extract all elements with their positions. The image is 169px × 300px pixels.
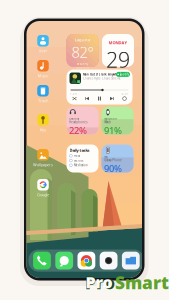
staticText: Charles Hyde Chaos Scheme [83,77,121,80]
staticText: Daily tasks [69,147,89,153]
staticText: Man Out If I Talk Anywhere [83,73,122,76]
staticText: Heat [74,154,80,157]
staticText: Pro [85,271,115,294]
button[interactable]: Daily tasks [66,144,98,172]
staticText: My Galaxy Phone [104,155,122,162]
button[interactable]: Phone [33,252,51,269]
button[interactable]: Messages [55,252,73,269]
staticText: Key [40,127,46,132]
button[interactable]: MONDAY [102,34,134,67]
staticText: User [38,48,47,53]
staticText: 82° [71,42,93,62]
button[interactable]: Wallpapers [31,149,55,167]
button[interactable]: Music [31,60,55,78]
button[interactable]: Key [31,114,55,132]
staticText: 1:24 [70,92,77,95]
staticText: Spotify [120,73,129,76]
staticText: Sunny [80,62,88,66]
staticText: 29 [106,45,130,74]
button[interactable]: My Green Watch [101,106,133,134]
staticText: MONDAY [108,40,127,45]
button[interactable]: Camera [100,252,117,269]
staticText: Google [37,192,49,197]
staticText: Trash [38,98,48,103]
staticText: Wallpapers [33,162,53,167]
staticText: Smart [115,271,169,294]
button[interactable]: Trash [31,85,55,103]
button[interactable]: Google [31,179,55,197]
button[interactable]: Overear Headphones [66,106,98,134]
button[interactable]: Man Out If I Talk Anywhere [66,69,132,104]
staticText: Mediation [74,163,88,167]
button[interactable]: Files [122,252,140,269]
staticText: 91% [104,124,122,137]
staticText: 22% [69,124,87,137]
staticText: H:88 L:58 [75,66,89,69]
button[interactable]: Laguna [66,34,98,67]
staticText: Pro [85,271,112,293]
staticText: 90% [104,162,122,175]
staticText: My Green Watch [104,117,117,124]
button[interactable]: User [31,35,55,53]
button[interactable]: My Galaxy Phone [101,144,133,172]
staticText: Laguna [75,37,90,42]
staticText: Overear Headphones [69,117,87,124]
staticText: Exercise [74,159,84,162]
staticText: -2:07 [121,92,129,95]
staticText: Music [37,73,48,78]
button[interactable]: Chrome [77,252,95,269]
